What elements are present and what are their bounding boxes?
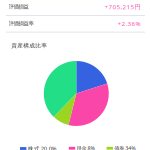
staticText: 評価損益 [8, 3, 28, 10]
staticText: 債券 34% [114, 145, 135, 150]
staticText: +2.36% [117, 19, 140, 28]
staticText: 資産構成比率 [11, 42, 47, 49]
staticText: 評価損益率 [8, 20, 33, 27]
staticText: +705,215円 [104, 3, 140, 11]
staticText: 現金 8% [76, 145, 94, 150]
staticText: 株式 20.0% [28, 145, 57, 150]
